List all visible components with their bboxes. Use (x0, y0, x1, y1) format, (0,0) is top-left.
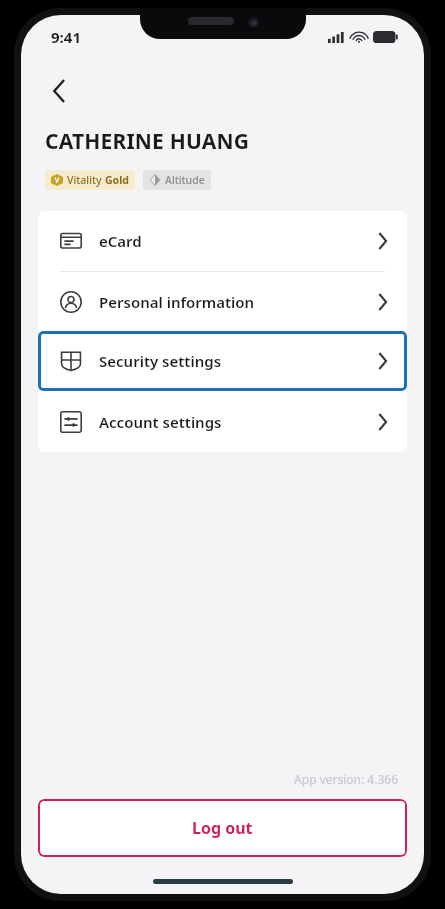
staticText: App version: 4.366 (21, 771, 398, 787)
staticText: 9:41 (51, 27, 81, 47)
staticText: Vitality (67, 173, 105, 187)
staticText: Account settings (99, 412, 222, 432)
button[interactable]: Account settings (38, 392, 407, 452)
button[interactable]: Altitude (143, 170, 211, 190)
staticText: Altitude (165, 173, 205, 187)
staticText: Gold (105, 173, 129, 187)
button[interactable]: Security settings (38, 331, 407, 391)
button[interactable]: Log out (38, 799, 407, 857)
button[interactable]: Personal information (38, 272, 407, 332)
button[interactable]: eCard (38, 211, 407, 271)
staticText: Log out (192, 817, 253, 839)
staticText: eCard (99, 231, 142, 251)
staticText: CATHERINE HUANG (45, 127, 250, 156)
staticText: Personal information (99, 292, 255, 312)
button[interactable]: Vitality (45, 170, 135, 190)
staticText: Security settings (99, 351, 222, 371)
button[interactable]: Back (37, 69, 81, 113)
